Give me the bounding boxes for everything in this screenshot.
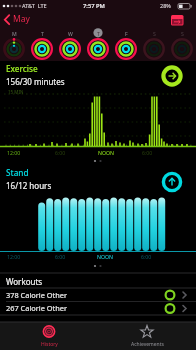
button[interactable]: [0, 166, 196, 196]
staticText: 16/12 hours: [6, 180, 52, 191]
staticText: T: [41, 30, 44, 37]
staticText: Stand: [6, 167, 29, 178]
button[interactable]: [0, 301, 196, 314]
button[interactable]: [0, 62, 196, 94]
staticText: 6:00: [141, 253, 152, 260]
staticText: T: [97, 30, 100, 37]
staticText: 28%: [160, 2, 171, 9]
staticText: S: [153, 30, 156, 37]
staticText: 6:00: [142, 149, 153, 156]
staticText: M: [12, 30, 17, 37]
button[interactable]: [0, 12, 70, 29]
staticText: 156/30 minutes: [6, 76, 65, 87]
staticText: S: [181, 30, 184, 37]
staticText: Exercise: [6, 63, 38, 74]
button[interactable]: [0, 288, 196, 301]
staticText: 7:57 PM: [83, 2, 105, 10]
button[interactable]: [168, 12, 190, 28]
staticText: May: [13, 13, 30, 25]
staticText: Achievements: [131, 341, 164, 348]
staticText: AT&T LTE: [22, 2, 47, 9]
staticText: 12:00: [7, 149, 21, 156]
staticText: 6:00: [55, 149, 66, 156]
staticText: 12:00: [7, 253, 21, 260]
staticText: 6:00: [55, 253, 66, 260]
staticText: History: [41, 341, 58, 348]
staticText: Workouts: [6, 276, 43, 287]
staticText: 15 MIN: [8, 89, 24, 95]
button[interactable]: Achievements: [98, 322, 196, 350]
staticText: 267 Calorie Other: [6, 303, 68, 313]
staticText: F: [125, 30, 128, 37]
staticText: W: [68, 30, 73, 37]
staticText: NOON: [97, 253, 113, 260]
button[interactable]: History: [0, 322, 98, 350]
staticText: 378 Calorie Other: [6, 290, 68, 300]
staticText: NOON: [98, 149, 114, 156]
